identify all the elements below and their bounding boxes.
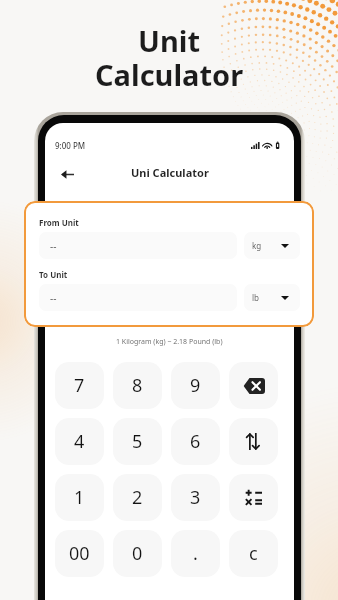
button[interactable]: Select unit [244,232,300,259]
button[interactable]: 00 [55,530,104,577]
button[interactable]: 8 [113,362,162,409]
button[interactable]: Back [52,159,82,189]
staticText: . [193,541,198,566]
staticText: 3 [190,485,201,510]
staticText: 1 [74,485,85,510]
staticText: 8 [132,373,143,398]
staticText: To Unit [39,269,68,280]
staticText: Unit [138,21,201,60]
staticText: lb [252,292,259,303]
button[interactable]: 4 [55,418,104,465]
button[interactable]: math [229,474,278,521]
staticText: From Unit [39,217,79,228]
staticText: 00 [69,541,90,566]
button[interactable]: 2 [113,474,162,521]
staticText: 1 Kilogram (kg) ~ 2.18 Pound (lb) [116,337,223,347]
button[interactable]: . [171,530,220,577]
button[interactable]: 3 [171,474,220,521]
staticText: -- [50,239,57,253]
button[interactable]: 9 [171,362,220,409]
button[interactable]: swap [229,418,278,465]
staticText: 9:00 PM [55,140,86,151]
staticText: kg [252,240,262,251]
button[interactable]: Select unit [244,284,300,311]
button[interactable]: 5 [113,418,162,465]
staticText: c [249,541,258,566]
staticText: -- [50,291,57,305]
button[interactable]: c [229,530,278,577]
staticText: 6 [190,429,201,454]
button[interactable]: 0 [113,530,162,577]
staticText: Uni Calculator [131,165,209,180]
staticText: 0 [132,541,143,566]
button[interactable]: 7 [55,362,104,409]
button[interactable]: 1 [55,474,104,521]
staticText: 7 [74,373,85,398]
button[interactable]: -- [39,284,237,311]
button[interactable]: del [229,362,278,409]
staticText: 4 [74,429,85,454]
button[interactable]: -- [39,232,237,259]
button[interactable]: 6 [171,418,220,465]
staticText: Calculator [95,55,244,94]
staticText: 9 [190,373,201,398]
staticText: 2 [132,485,143,510]
staticText: 5 [132,429,143,454]
